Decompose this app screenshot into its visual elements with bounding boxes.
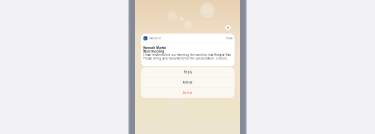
button[interactable]: Delete (141, 88, 234, 98)
staticText: Next meeting (143, 50, 164, 53)
staticText: Reply (184, 70, 192, 74)
staticText: now (226, 36, 232, 40)
button[interactable]: Archive (141, 78, 234, 88)
staticText: I have rescheduled our meeting this week… (143, 53, 231, 57)
button[interactable]: Reply (141, 67, 234, 77)
staticText: Archive (183, 81, 193, 84)
staticText: Hannah Martin (143, 46, 166, 50)
staticText: Please bring your documents for the pres… (143, 57, 227, 60)
button[interactable]: Clear notifications (225, 25, 231, 30)
staticText: Delete (183, 91, 193, 95)
staticText: MAILBOX (149, 36, 161, 40)
